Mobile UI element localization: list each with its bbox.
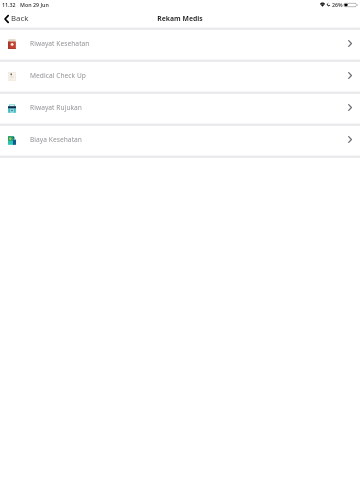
staticText: Biaya Kesehatan — [30, 135, 82, 144]
button[interactable]: Biaya Kesehatan — [0, 125, 360, 157]
button[interactable]: Riwayat Kesehatan — [0, 29, 360, 61]
staticText: Riwayat Kesehatan — [30, 39, 90, 48]
staticText: Riwayat Rujukan — [30, 103, 82, 112]
staticText: Mon 29 Jun — [20, 1, 49, 8]
other: Wi-Fi — [320, 2, 325, 7]
other: Do not disturb — [327, 2, 330, 7]
button[interactable]: Medical Check Up — [0, 61, 360, 93]
staticText: Rekam Medis — [157, 14, 203, 23]
button[interactable]: Riwayat Rujukan — [0, 93, 360, 125]
staticText: 26% — [332, 1, 343, 8]
button[interactable]: Back — [0, 11, 35, 26]
staticText: Medical Check Up — [30, 71, 86, 80]
other: Battery 26 percent — [344, 2, 359, 8]
staticText: 11.32 — [2, 1, 16, 8]
staticText: Back — [11, 13, 29, 24]
